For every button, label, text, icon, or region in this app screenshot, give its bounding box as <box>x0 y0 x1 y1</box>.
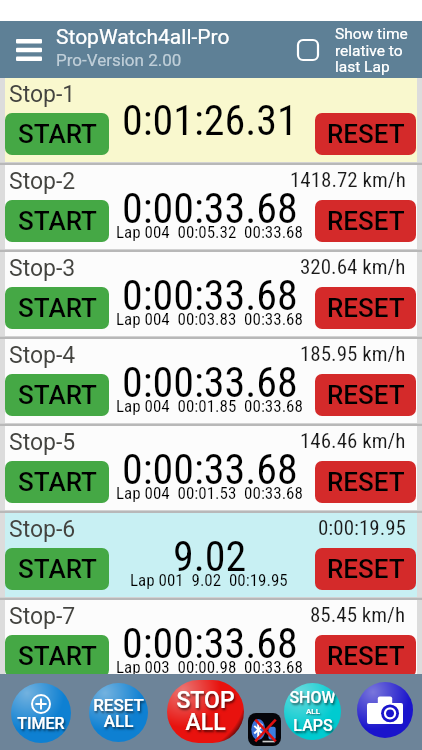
button[interactable]: Stop all <box>167 680 244 743</box>
staticText: Lap 003 00:00.98 00:33.68 <box>116 657 303 677</box>
staticText: START <box>18 641 97 671</box>
staticText: START <box>18 206 97 236</box>
button[interactable]: START <box>5 635 109 677</box>
button[interactable]: START <box>5 113 109 155</box>
button[interactable]: START <box>5 461 109 503</box>
staticText: 0:00:33.68 <box>122 184 298 233</box>
button[interactable]: START <box>5 200 109 242</box>
staticText: Stop-5 <box>9 429 76 456</box>
staticText: 0:00:33.68 <box>122 445 298 494</box>
staticText: RESET <box>327 206 405 236</box>
staticText: Stop-1 <box>9 81 76 108</box>
button[interactable]: Show all laps <box>284 683 341 740</box>
staticText: Stop-4 <box>9 342 76 369</box>
button[interactable]: RESET <box>315 548 416 590</box>
staticText: START <box>18 467 97 497</box>
button[interactable]: START <box>5 287 109 329</box>
button[interactable]: RESET <box>315 113 416 155</box>
staticText: Stop-7 <box>9 603 76 630</box>
button[interactable]: Timer <box>11 683 71 743</box>
staticText: Lap 004 00:01.53 00:33.68 <box>116 483 303 503</box>
staticText: Stop-2 <box>9 168 76 195</box>
button[interactable]: RESET <box>315 287 416 329</box>
button[interactable]: Open navigation menu <box>0 21 57 78</box>
staticText: START <box>18 554 97 584</box>
button[interactable]: Camera <box>357 682 413 738</box>
staticText: 146.46 km/h <box>300 429 406 454</box>
staticText: RESET <box>327 554 405 584</box>
staticText: START <box>18 380 97 410</box>
button[interactable]: START <box>5 548 109 590</box>
button[interactable]: Reset all <box>89 683 148 742</box>
staticText: RESET <box>327 641 405 671</box>
staticText: LAPS <box>293 716 333 735</box>
staticText: Lap 004 00:03.83 00:33.68 <box>116 309 303 329</box>
staticText: RESET <box>327 293 405 323</box>
staticText: 0:00:33.68 <box>122 358 298 407</box>
staticText: Lap 004 00:05.32 00:33.68 <box>116 222 303 242</box>
staticText: START <box>18 119 97 149</box>
staticText: Stop-6 <box>9 516 76 543</box>
staticText: RESET <box>327 467 405 497</box>
staticText: RESET ALL <box>93 695 144 731</box>
staticText: StopWatch4all-Pro <box>56 25 230 50</box>
staticText: Stop-3 <box>9 255 76 282</box>
button[interactable]: START <box>5 374 109 416</box>
staticText: 0:00:19.95 <box>318 516 406 541</box>
staticText: 320.64 km/h <box>300 255 406 280</box>
staticText: Pro-Version 2.00 <box>56 50 182 70</box>
staticText: Lap 001 9.02 00:19.95 <box>130 570 288 590</box>
staticText: 1418.72 km/h <box>290 168 406 193</box>
staticText: 9.02 <box>173 532 247 581</box>
button[interactable]: Show time relative to last Lap <box>298 40 318 60</box>
staticText: 0:01:26.31 <box>122 96 298 145</box>
staticText: Lap 004 00:01.85 00:33.68 <box>116 396 303 416</box>
staticText: 185.95 km/h <box>300 342 406 367</box>
staticText: START <box>18 293 97 323</box>
button[interactable]: RESET <box>315 200 416 242</box>
staticText: 0:00:33.68 <box>122 271 298 320</box>
staticText: 85.45 km/h <box>310 603 406 628</box>
button[interactable]: RESET <box>315 635 416 677</box>
staticText: RESET <box>327 380 405 410</box>
button[interactable]: RESET <box>315 461 416 503</box>
staticText: 0:00:33.68 <box>122 619 298 668</box>
staticText: ALL <box>306 707 320 716</box>
button[interactable]: RESET <box>315 374 416 416</box>
staticText: STOP ALL <box>176 687 235 736</box>
staticText: TIMER <box>17 714 65 733</box>
button[interactable]: Bluetooth disabled <box>248 713 281 746</box>
staticText: Show time relative to last Lap <box>335 25 408 75</box>
staticText: SHOW <box>289 688 336 707</box>
staticText: RESET <box>327 119 405 149</box>
